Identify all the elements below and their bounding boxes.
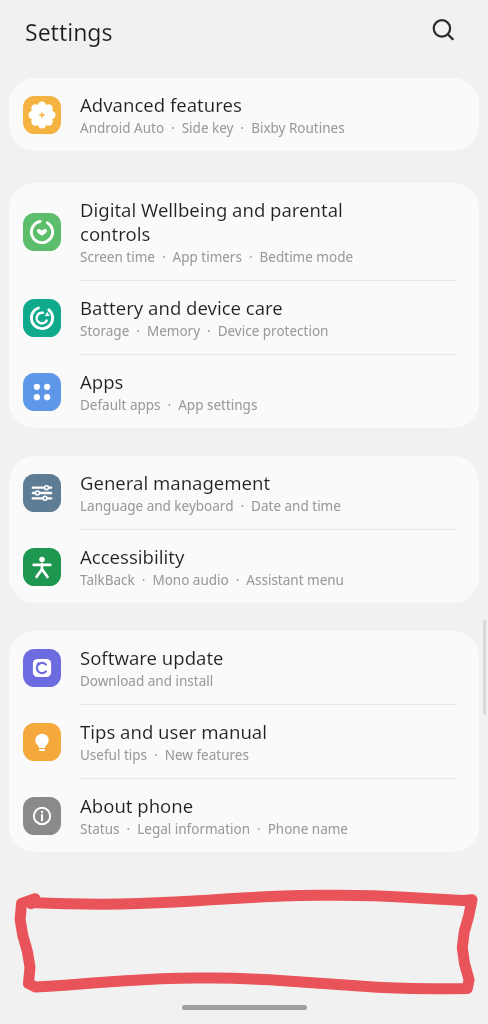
staticText: Status · Legal information · Phone name: [80, 820, 348, 838]
staticText: About phone: [80, 793, 194, 818]
staticText: General management: [80, 470, 271, 495]
button[interactable]: Accessibility: [9, 530, 479, 603]
button[interactable]: Advanced features: [9, 78, 479, 151]
staticText: Download and install: [80, 672, 214, 690]
staticText: Battery and device care: [80, 295, 283, 320]
staticText: Storage · Memory · Device protection: [80, 322, 329, 340]
staticText: Tips and user manual: [80, 719, 267, 744]
staticText: Digital Wellbeing and parental controls: [80, 197, 343, 246]
staticText: Apps: [80, 369, 124, 394]
button[interactable]: Software update: [9, 631, 479, 704]
staticText: Android Auto · Side key · Bixby Routines: [80, 119, 345, 137]
button[interactable]: About phone: [9, 779, 479, 852]
staticText: Screen time · App timers · Bedtime mode: [80, 248, 354, 266]
staticText: TalkBack · Mono audio · Assistant menu: [80, 571, 344, 589]
button[interactable]: Apps: [9, 355, 479, 428]
staticText: Language and keyboard · Date and time: [80, 497, 341, 515]
button[interactable]: Digital Wellbeing and parental controls: [9, 183, 479, 280]
staticText: Settings: [25, 16, 113, 47]
button[interactable]: Search: [422, 9, 466, 53]
button[interactable]: General management: [9, 456, 479, 529]
button[interactable]: Tips and user manual: [9, 705, 479, 778]
staticText: Accessibility: [80, 544, 185, 569]
staticText: Advanced features: [80, 92, 242, 117]
staticText: Software update: [80, 645, 224, 670]
staticText: Default apps · App settings: [80, 396, 258, 414]
staticText: Useful tips · New features: [80, 746, 249, 764]
button[interactable]: Battery and device care: [9, 281, 479, 354]
